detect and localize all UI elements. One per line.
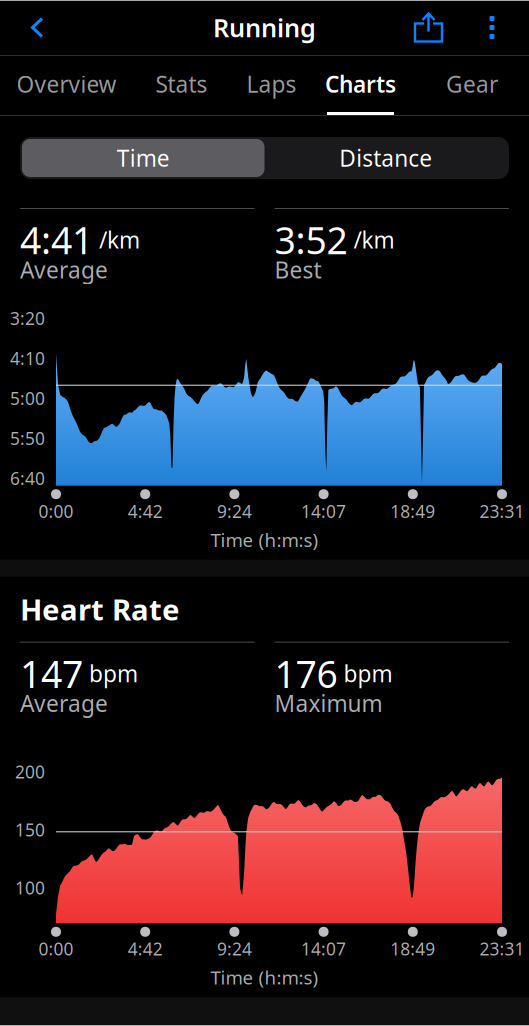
staticText: Maximum xyxy=(274,688,382,718)
staticText: 4:42 xyxy=(128,500,163,523)
staticText: 23:31 xyxy=(479,937,524,960)
button[interactable]: Distance xyxy=(264,139,507,177)
staticText: /km xyxy=(347,225,394,255)
staticText: 4:10 xyxy=(10,347,45,370)
button[interactable]: Laps xyxy=(239,56,304,115)
staticText: 100 xyxy=(15,876,45,899)
staticText: 9:24 xyxy=(217,500,252,523)
staticText: Distance xyxy=(339,143,432,173)
staticText: Time xyxy=(117,143,170,173)
staticText: 150 xyxy=(15,818,45,841)
staticText: /km xyxy=(93,225,140,255)
staticText: 147 xyxy=(20,649,83,698)
staticText: 3:20 xyxy=(10,307,45,330)
button[interactable]: More options xyxy=(469,0,529,54)
staticText: Time (h:m:s) xyxy=(210,527,318,552)
staticText: Best xyxy=(274,255,321,285)
staticText: 176 xyxy=(274,649,337,698)
staticText: 6:40 xyxy=(10,467,45,490)
staticText: 14:07 xyxy=(301,937,346,960)
staticText: 18:49 xyxy=(390,937,435,960)
staticText: 14:07 xyxy=(301,500,346,523)
staticText: bpm xyxy=(337,658,392,688)
button[interactable]: Share xyxy=(404,0,469,54)
button[interactable]: Stats xyxy=(124,56,239,115)
staticText: 3:52 xyxy=(274,215,347,265)
staticText: Laps xyxy=(246,69,296,99)
button[interactable]: Time xyxy=(22,139,264,177)
staticText: 0:00 xyxy=(38,500,73,523)
staticText: 200 xyxy=(15,760,45,783)
staticText: 0:00 xyxy=(38,937,73,960)
staticText: 5:00 xyxy=(10,387,45,410)
staticText: Heart Rate xyxy=(20,590,180,629)
staticText: Time (h:m:s) xyxy=(210,965,318,990)
staticText: 9:24 xyxy=(217,937,252,960)
staticText: Gear xyxy=(446,69,498,99)
staticText: Charts xyxy=(325,69,396,99)
staticText: 4:42 xyxy=(128,937,163,960)
staticText: Average xyxy=(20,688,108,718)
button[interactable]: Charts xyxy=(304,56,417,115)
staticText: Average xyxy=(20,255,108,285)
staticText: 23:31 xyxy=(479,500,524,523)
staticText: Overview xyxy=(16,69,116,99)
button[interactable]: Back xyxy=(0,0,60,54)
button[interactable]: Overview xyxy=(9,56,124,115)
staticText: 4:41 xyxy=(20,215,93,265)
staticText: Stats xyxy=(155,69,207,99)
button[interactable]: Gear xyxy=(417,56,527,115)
staticText: Running xyxy=(213,11,316,44)
staticText: bpm xyxy=(83,658,138,688)
staticText: 18:49 xyxy=(390,500,435,523)
staticText: 5:50 xyxy=(10,427,45,450)
